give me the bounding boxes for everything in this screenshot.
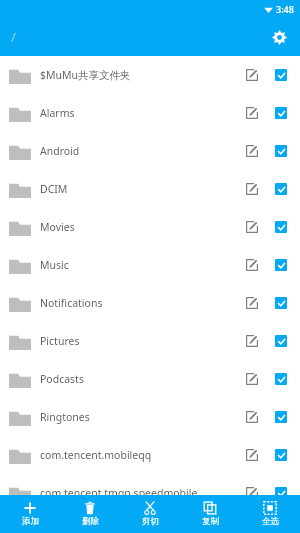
button[interactable]: Rename — [239, 442, 265, 468]
button[interactable]: Selected — [268, 252, 294, 278]
button[interactable]: Selected — [268, 290, 294, 316]
staticText: 删除 — [82, 516, 99, 527]
staticText: 添加 — [22, 516, 39, 527]
button[interactable]: Selected — [268, 328, 294, 354]
button[interactable]: Rename — [239, 512, 265, 533]
staticText: DCIM — [40, 182, 68, 196]
staticText: Notifications — [40, 296, 103, 310]
button[interactable]: Rename — [239, 62, 265, 88]
button[interactable]: Movies — [0, 208, 300, 246]
button[interactable]: Pictures — [0, 322, 300, 360]
button[interactable]: com.tencent.mobileqq — [0, 436, 300, 474]
button[interactable]: Rename — [239, 328, 265, 354]
staticText: 3:48 — [276, 3, 294, 15]
button[interactable]: Selected — [268, 480, 294, 506]
button[interactable]: Selected — [268, 442, 294, 468]
button[interactable]: Selected — [268, 100, 294, 126]
button[interactable]: Rename — [239, 138, 265, 164]
staticText: 复制 — [202, 516, 219, 527]
staticText: Podcasts — [40, 372, 84, 386]
button[interactable]: 删除 — [60, 495, 120, 533]
button[interactable]: Selected — [268, 214, 294, 240]
button[interactable]: Android — [0, 132, 300, 170]
staticText: Pictures — [40, 334, 80, 348]
button[interactable]: Rename — [239, 176, 265, 202]
button[interactable]: DCIM — [0, 170, 300, 208]
button[interactable]: 复制 — [180, 495, 240, 533]
staticText: Android — [40, 144, 80, 158]
staticText: Alarms — [40, 106, 75, 120]
button[interactable]: com.tencent.tmgp.sgame — [0, 512, 300, 533]
button[interactable]: 剪切 — [120, 495, 180, 533]
button[interactable]: Rename — [239, 290, 265, 316]
staticText: com.tencent.tmgp.speedmobile — [40, 486, 198, 500]
staticText: $MuMu共享文件夹 — [40, 68, 131, 82]
staticText: / — [11, 28, 16, 46]
button[interactable]: com.tencent.tmgp.speedmobile — [0, 474, 300, 512]
button[interactable]: Music — [0, 246, 300, 284]
button[interactable]: Selected — [268, 176, 294, 202]
button[interactable]: Rename — [239, 100, 265, 126]
button[interactable]: Selected — [268, 512, 294, 533]
button[interactable]: Rename — [239, 480, 265, 506]
button[interactable]: Notifications — [0, 284, 300, 322]
staticText: Ringtones — [40, 410, 90, 424]
button[interactable]: $MuMu共享文件夹 — [0, 56, 300, 94]
staticText: Movies — [40, 220, 75, 234]
button[interactable]: Ringtones — [0, 398, 300, 436]
button[interactable]: 全选 — [240, 495, 300, 533]
button[interactable]: Alarms — [0, 94, 300, 132]
staticText: 剪切 — [142, 516, 159, 527]
button[interactable]: Rename — [239, 366, 265, 392]
staticText: Music — [40, 258, 69, 272]
button[interactable]: Rename — [239, 404, 265, 430]
staticText: com.tencent.tmgp.sgame — [40, 516, 167, 530]
staticText: com.tencent.mobileqq — [40, 448, 152, 462]
staticText: 全选 — [262, 516, 279, 527]
button[interactable]: Selected — [268, 138, 294, 164]
button[interactable]: Rename — [239, 252, 265, 278]
button[interactable]: Podcasts — [0, 360, 300, 398]
button[interactable]: 添加 — [0, 495, 60, 533]
button[interactable]: Selected — [268, 366, 294, 392]
button[interactable]: Rename — [239, 214, 265, 240]
button[interactable]: Selected — [268, 62, 294, 88]
button[interactable]: Selected — [268, 404, 294, 430]
button[interactable]: Settings — [264, 22, 294, 52]
